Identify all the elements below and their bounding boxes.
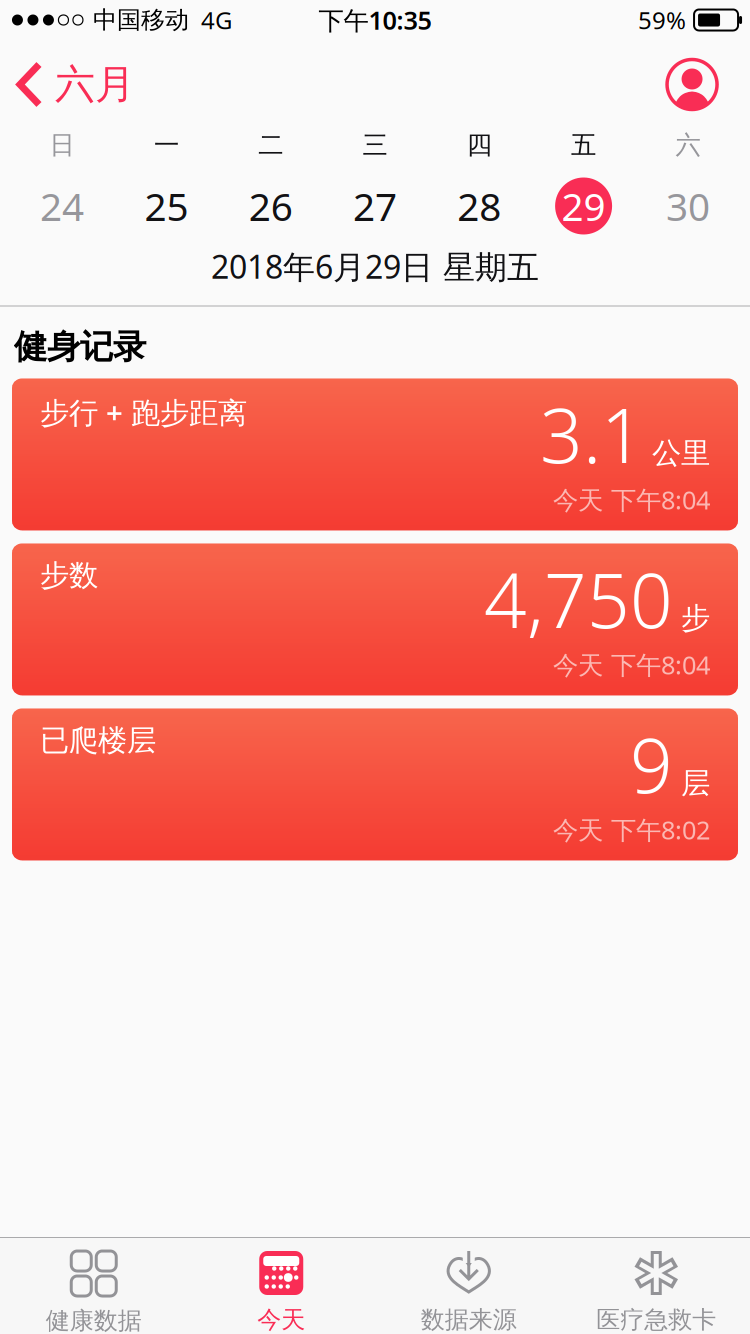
staticText: 六: [675, 129, 700, 160]
staticText: 步: [681, 600, 710, 636]
button[interactable]: 已爬楼层: [12, 708, 738, 860]
staticText: 59%: [638, 4, 686, 36]
staticText: 4G: [201, 4, 232, 36]
staticText: 今天 下午8:04: [553, 648, 710, 681]
button[interactable]: 29: [531, 167, 636, 245]
staticText: 健康数据: [46, 1306, 142, 1334]
staticText: 29: [562, 180, 606, 232]
staticText: 日: [50, 129, 75, 160]
button[interactable]: 健康数据: [0, 1238, 187, 1334]
staticText: 医疗急救卡: [596, 1305, 716, 1334]
staticText: 27: [353, 180, 397, 232]
staticText: 中国移动: [93, 5, 189, 35]
staticText: 五: [571, 129, 596, 160]
staticText: 30: [666, 180, 710, 232]
staticText: 三: [362, 129, 387, 160]
staticText: 健身记录: [14, 326, 146, 367]
staticText: 25: [144, 180, 188, 232]
staticText: 2018年6月29日 星期五: [211, 245, 539, 287]
staticText: 数据来源: [421, 1305, 517, 1334]
button[interactable]: 步数: [12, 543, 738, 695]
staticText: 公里: [652, 435, 710, 471]
button[interactable]: 25: [114, 167, 219, 245]
staticText: 层: [681, 765, 710, 801]
staticText: 一: [154, 129, 179, 160]
button[interactable]: 27: [323, 167, 427, 245]
button[interactable]: 医疗急救卡: [562, 1238, 750, 1334]
button[interactable]: 步行 + 跑步距离: [12, 378, 738, 530]
staticText: 26: [249, 180, 293, 232]
button[interactable]: 26: [219, 167, 323, 245]
button[interactable]: 今天: [187, 1238, 375, 1334]
button[interactable]: 30: [636, 167, 740, 245]
staticText: 9: [630, 714, 673, 814]
staticText: 今天: [257, 1305, 305, 1334]
button[interactable]: 28: [427, 167, 531, 245]
staticText: 4,750: [484, 549, 673, 649]
staticText: 步行 + 跑步距离: [40, 392, 247, 431]
staticText: 四: [467, 129, 492, 160]
staticText: 今天 下午8:02: [553, 813, 710, 846]
staticText: 3.1: [540, 384, 644, 484]
button[interactable]: 数据来源: [375, 1238, 562, 1334]
button[interactable]: 24: [10, 167, 114, 245]
staticText: 24: [40, 180, 84, 232]
staticText: 28: [457, 180, 501, 232]
button[interactable]: [666, 58, 750, 110]
staticText: 已爬楼层: [40, 722, 156, 758]
staticText: 今天 下午8:04: [553, 483, 710, 516]
staticText: 六月: [55, 60, 135, 109]
staticText: 下午10:35: [318, 3, 431, 37]
staticText: 二: [258, 129, 283, 160]
staticText: 步数: [40, 557, 98, 593]
button[interactable]: 六月: [0, 60, 135, 109]
